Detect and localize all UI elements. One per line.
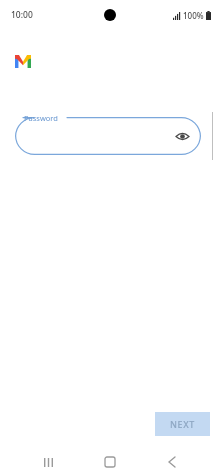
button[interactable]: Recent apps [36, 450, 60, 474]
button[interactable]: Show password [173, 127, 191, 145]
staticText: Password [24, 113, 58, 123]
button[interactable]: NEXT [155, 412, 210, 436]
staticText: 10:00 [11, 9, 33, 21]
button[interactable]: Back [160, 450, 184, 474]
button[interactable]: Home [98, 450, 122, 474]
staticText: 100% [183, 10, 204, 21]
button[interactable]: Password [15, 113, 201, 155]
staticText: NEXT [170, 418, 195, 430]
